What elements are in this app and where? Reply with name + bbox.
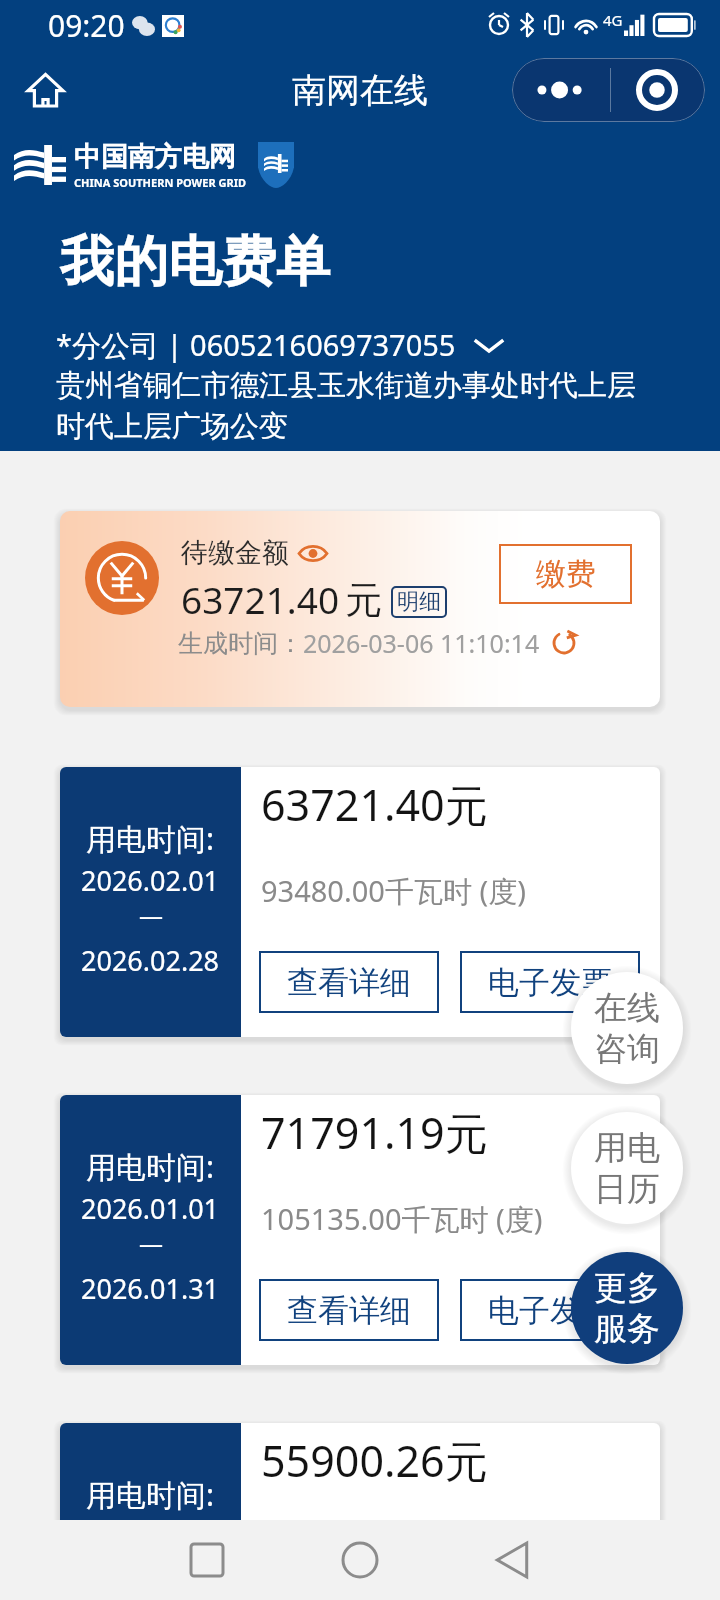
staticText: 2026.02.01 <box>81 862 220 899</box>
button[interactable]: 查看详细 <box>259 1279 439 1341</box>
button[interactable]: Home <box>14 59 76 121</box>
staticText: CHINA SOUTHERN POWER GRID <box>74 175 246 190</box>
staticText: 用电时间: <box>86 1474 215 1515</box>
staticText: 中国南方电网 <box>74 140 236 174</box>
button[interactable]: Back <box>472 1520 552 1600</box>
staticText: 更多 服务 <box>594 1267 660 1350</box>
staticText: 2026.01.01 <box>81 1190 220 1227</box>
staticText: 缴费 <box>536 555 596 593</box>
button[interactable]: Close <box>609 58 705 122</box>
staticText: 查看详细 <box>287 963 411 1002</box>
staticText: 明细 <box>397 588 441 616</box>
staticText: 用电时间: <box>86 818 215 859</box>
staticText: 63721.40 <box>181 574 340 624</box>
button[interactable]: 更多 服务 <box>571 1252 683 1364</box>
staticText: 09:20 <box>48 5 125 46</box>
staticText: 在线 咨询 <box>594 987 660 1070</box>
button[interactable]: 电子发票 <box>460 951 640 1013</box>
staticText: 南网在线 <box>292 69 428 112</box>
button[interactable]: 待缴金额 <box>60 511 660 707</box>
button[interactable]: 用电时间: <box>60 767 660 1037</box>
staticText: 93480.00千瓦时 (度) <box>261 871 526 911</box>
staticText: 105135.00千瓦时 (度) <box>261 1199 543 1239</box>
staticText: 元 <box>345 577 382 624</box>
staticText: 生成时间： <box>178 628 303 659</box>
staticText: 电子发票 <box>488 963 612 1002</box>
staticText: 贵州省铜仁市德江县玉水街道办事处时代上层时代上层广场公变 <box>56 367 636 444</box>
staticText: 用电 日历 <box>594 1127 660 1210</box>
staticText: 我的电费单 <box>60 228 330 296</box>
staticText: 电子发票 <box>488 1291 612 1330</box>
staticText: 用电时间: <box>86 1146 215 1187</box>
button[interactable]: Home <box>320 1520 400 1600</box>
staticText: 待缴金额 <box>181 536 289 570</box>
button[interactable]: 明细 <box>391 586 447 618</box>
button[interactable]: 用电时间: <box>60 1423 660 1600</box>
staticText: 2025.12.01 <box>81 1518 220 1555</box>
button[interactable]: Recents <box>167 1520 247 1600</box>
staticText: *分公司 | 0605216069737055 <box>56 325 456 365</box>
staticText: 71791.19元 <box>261 1103 488 1162</box>
button[interactable]: 用电 日历 <box>571 1112 683 1224</box>
button[interactable]: More options <box>512 58 608 122</box>
button[interactable]: 在线 咨询 <box>571 972 683 1084</box>
button[interactable]: 电子发票 <box>460 1279 640 1341</box>
button[interactable]: 查看详细 <box>259 951 439 1013</box>
staticText: 55900.26元 <box>261 1431 488 1490</box>
staticText: 88000.00千瓦时 (度) <box>261 1527 526 1567</box>
staticText: 63721.40元 <box>261 775 488 834</box>
staticText: — <box>139 898 163 931</box>
button[interactable]: 用电时间: <box>60 1095 660 1365</box>
staticText: — <box>139 1226 163 1259</box>
staticText: 2026.02.28 <box>81 942 220 979</box>
staticText: 2026-03-06 11:10:14 <box>303 626 540 660</box>
staticText: 查看详细 <box>287 1291 411 1330</box>
staticText: 4G <box>603 10 623 30</box>
staticText: 2026.01.31 <box>81 1270 220 1307</box>
button[interactable]: 缴费 <box>499 544 632 604</box>
